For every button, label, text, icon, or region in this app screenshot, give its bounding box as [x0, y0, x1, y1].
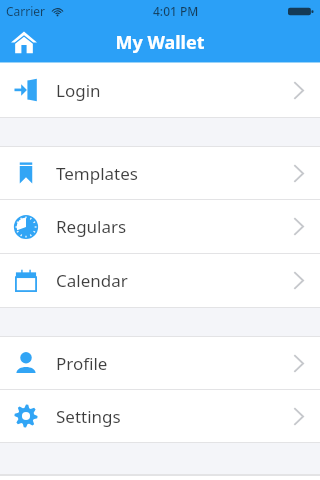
staticText: My Wallet	[115, 30, 205, 55]
staticText: Regulars	[56, 215, 127, 238]
button[interactable]: Login	[0, 63, 320, 117]
staticText: Calendar	[56, 269, 128, 292]
staticText: Settings	[56, 405, 121, 428]
staticText: 4:01 PM	[153, 3, 199, 19]
button[interactable]: Settings	[0, 390, 320, 442]
staticText: Templates	[56, 162, 138, 185]
button[interactable]: Templates	[0, 147, 320, 199]
staticText: Login	[56, 79, 101, 102]
button[interactable]: Profile	[0, 337, 320, 389]
button[interactable]: Calendar	[0, 254, 320, 307]
staticText: Carrier	[6, 3, 46, 19]
staticText: Profile	[56, 352, 108, 375]
button[interactable]: Regulars	[0, 200, 320, 253]
button[interactable]: Home	[6, 24, 42, 60]
